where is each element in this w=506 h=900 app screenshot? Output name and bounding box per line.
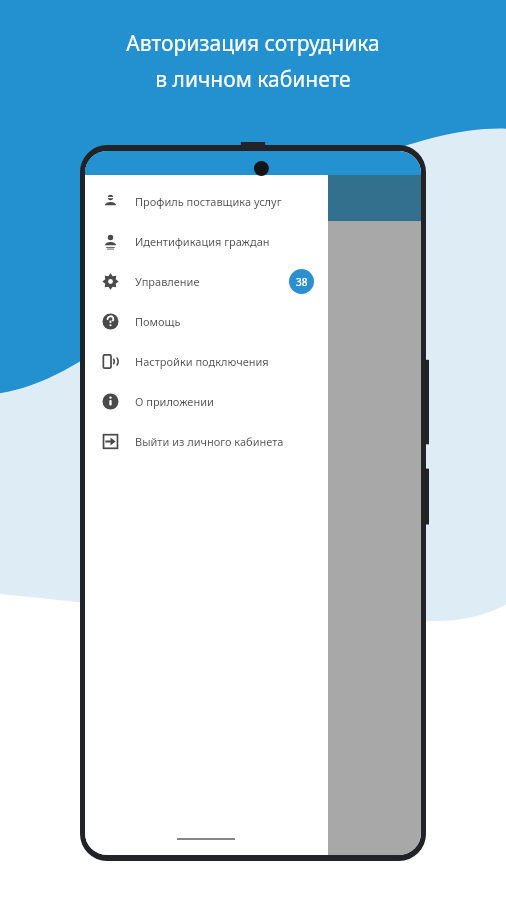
staticText: 38 xyxy=(296,275,308,289)
staticText: в личном кабинете xyxy=(155,65,351,94)
button[interactable]: Close drawer xyxy=(85,221,421,855)
staticText: Выйти из личного кабинета xyxy=(135,434,284,449)
button[interactable]: О приложении xyxy=(85,381,328,421)
button[interactable]: Профиль поставщика услуг xyxy=(85,181,328,221)
staticText: О приложении xyxy=(135,394,214,409)
staticText: Идентификация граждан xyxy=(135,234,270,249)
button[interactable]: Идентификация граждан xyxy=(85,221,328,261)
staticText: Настройки подключения xyxy=(135,354,269,369)
button[interactable]: Помощь xyxy=(85,301,328,341)
button[interactable]: App bar xyxy=(85,175,421,221)
button[interactable]: Настройки подключения xyxy=(85,341,328,381)
staticText: Авторизация сотрудника xyxy=(126,29,380,58)
button[interactable]: Выйти из личного кабинета xyxy=(85,421,328,461)
staticText: Профиль поставщика услуг xyxy=(135,194,282,209)
staticText: Помощь xyxy=(135,314,181,329)
staticText: Управление xyxy=(135,274,200,289)
button[interactable]: Управление xyxy=(85,261,328,301)
